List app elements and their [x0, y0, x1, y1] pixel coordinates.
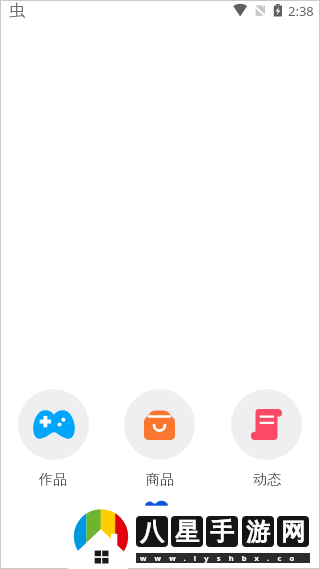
- staticText: 动态: [253, 471, 281, 487]
- staticText: 2:38: [288, 2, 314, 20]
- staticText: 星: [175, 517, 199, 547]
- button[interactable]: 商品: [106, 389, 213, 487]
- staticText: 游: [246, 517, 270, 547]
- staticText: 虫: [9, 1, 25, 21]
- button[interactable]: 动态: [213, 389, 320, 487]
- staticText: 网: [281, 517, 305, 547]
- staticText: 手: [210, 517, 234, 547]
- staticText: 八: [140, 517, 164, 547]
- staticText: 商品: [146, 471, 174, 487]
- button[interactable]: 作品: [0, 389, 106, 487]
- staticText: www.lyshbx.com: [140, 553, 314, 563]
- staticText: 作品: [39, 471, 67, 487]
